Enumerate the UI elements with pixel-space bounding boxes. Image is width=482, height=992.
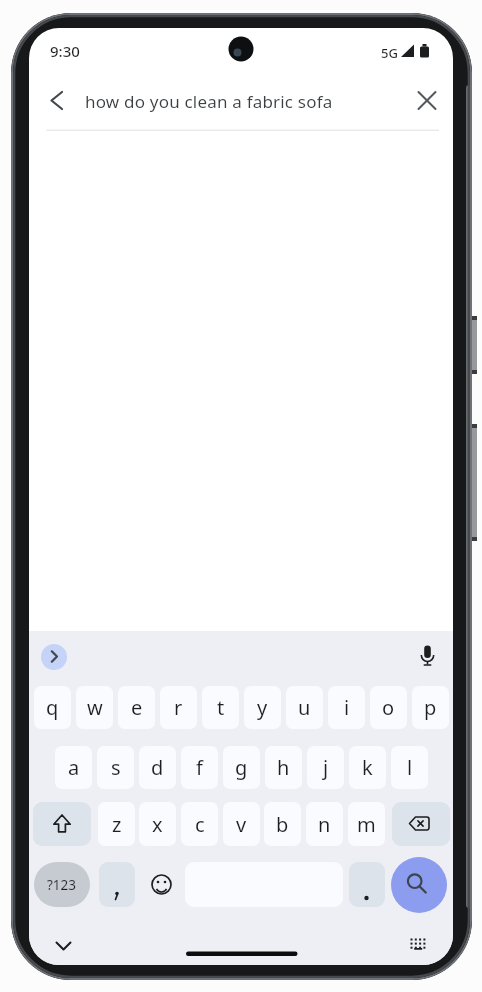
staticText: a xyxy=(68,754,80,781)
button[interactable]: x xyxy=(139,802,176,846)
staticText: 9:30 xyxy=(50,41,80,61)
button[interactable] xyxy=(392,802,450,846)
button[interactable]: y xyxy=(244,686,281,729)
staticText: m xyxy=(357,811,376,838)
button[interactable]: t xyxy=(202,686,239,729)
button[interactable]: q xyxy=(34,686,71,729)
staticText: w xyxy=(87,694,103,721)
staticText: i xyxy=(344,694,350,721)
staticText: d xyxy=(151,754,164,781)
staticText: u xyxy=(298,694,311,721)
button[interactable]: v xyxy=(223,802,260,846)
button[interactable] xyxy=(410,84,444,117)
staticText: z xyxy=(112,811,122,838)
button[interactable]: r xyxy=(160,686,197,729)
button[interactable] xyxy=(402,931,433,958)
button[interactable]: s xyxy=(97,746,134,789)
button[interactable] xyxy=(412,637,443,669)
staticText: c xyxy=(195,811,205,838)
button[interactable]: n xyxy=(306,802,343,846)
button[interactable] xyxy=(48,933,79,960)
button[interactable]: f xyxy=(181,746,218,789)
button[interactable]: k xyxy=(349,746,386,789)
staticText: 5G xyxy=(381,44,398,62)
button[interactable]: p xyxy=(412,686,449,729)
button[interactable]: i xyxy=(328,686,365,729)
staticText: o xyxy=(382,694,395,721)
button[interactable]: m xyxy=(348,802,385,846)
button[interactable] xyxy=(99,862,135,907)
button[interactable] xyxy=(146,869,177,900)
button[interactable]: o xyxy=(370,686,407,729)
staticText: f xyxy=(196,754,203,781)
staticText: v xyxy=(236,811,247,838)
button[interactable]: u xyxy=(286,686,323,729)
button[interactable] xyxy=(391,857,447,913)
button[interactable]: ?123 xyxy=(34,862,90,907)
staticText: k xyxy=(362,754,373,781)
staticText: y xyxy=(257,694,268,721)
button[interactable]: h xyxy=(265,746,302,789)
staticText: l xyxy=(407,754,413,781)
staticText: how do you clean a fabric sofa xyxy=(85,90,333,113)
staticText: b xyxy=(276,811,289,838)
button[interactable] xyxy=(41,644,67,670)
staticText: n xyxy=(318,811,331,838)
staticText: g xyxy=(235,754,248,781)
staticText: e xyxy=(131,694,143,721)
button[interactable]: how do you clean a fabric sofa xyxy=(69,81,441,121)
staticText: h xyxy=(277,754,290,781)
button[interactable]: l xyxy=(391,746,428,789)
button[interactable]: z xyxy=(98,802,135,846)
button[interactable] xyxy=(33,802,91,846)
staticText: ?123 xyxy=(47,876,77,894)
staticText: r xyxy=(174,694,183,721)
button[interactable]: b xyxy=(264,802,301,846)
staticText: p xyxy=(424,694,437,721)
button[interactable] xyxy=(41,85,77,117)
button[interactable]: e xyxy=(118,686,155,729)
staticText: q xyxy=(46,694,59,721)
button[interactable]: c xyxy=(181,802,218,846)
button[interactable]: w xyxy=(76,686,113,729)
button[interactable]: d xyxy=(139,746,176,789)
staticText: x xyxy=(152,811,163,838)
staticText: t xyxy=(217,694,225,721)
button[interactable] xyxy=(349,862,385,907)
button[interactable]: j xyxy=(307,746,344,789)
staticText: j xyxy=(323,754,329,781)
button[interactable]: a xyxy=(55,746,92,789)
staticText: s xyxy=(111,754,121,781)
button[interactable]: g xyxy=(223,746,260,789)
